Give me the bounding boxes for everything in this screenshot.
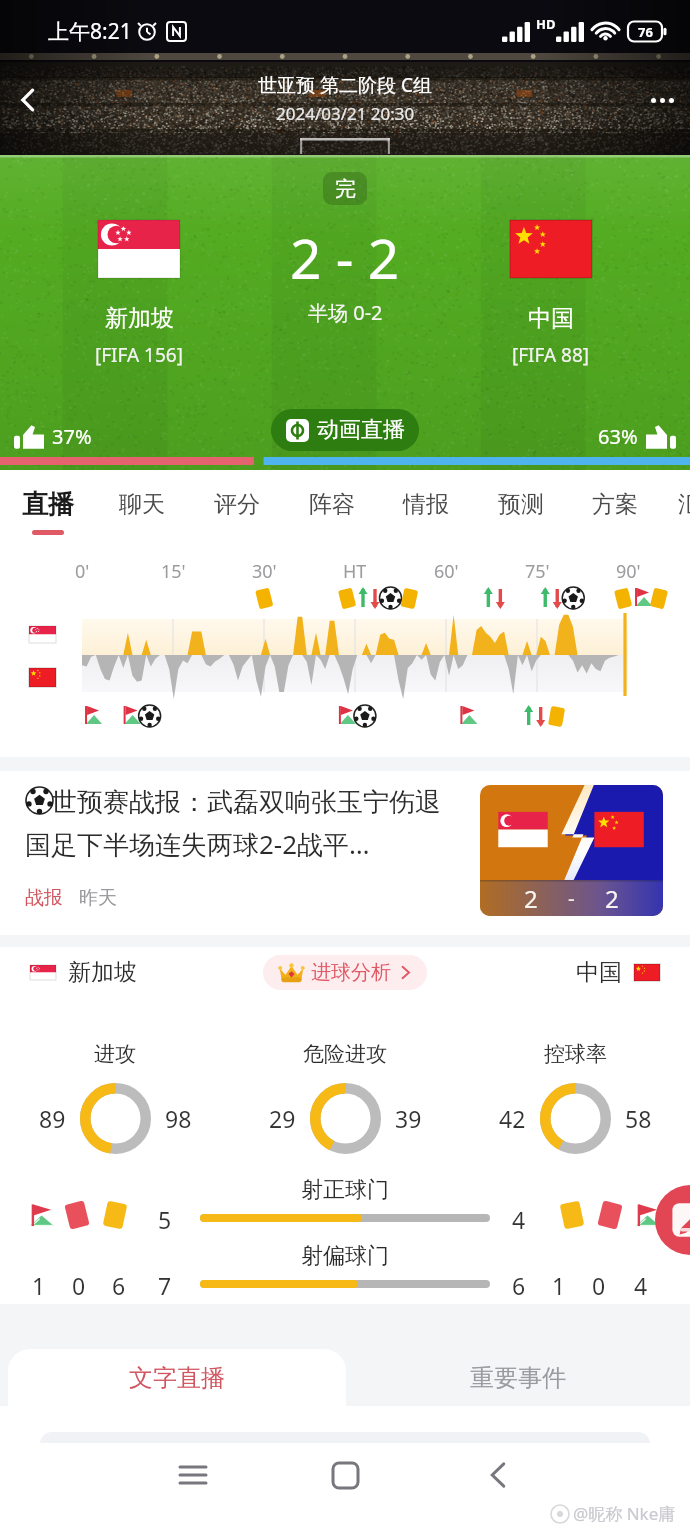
button[interactable]: 动画直播: [271, 409, 419, 451]
staticText: 4: [512, 1204, 526, 1235]
staticText: -: [568, 884, 575, 913]
staticText: 文字直播: [129, 1363, 225, 1393]
staticText: 评分: [214, 490, 260, 519]
button[interactable]: 方案: [583, 470, 647, 541]
staticText: HD: [536, 15, 556, 33]
button[interactable]: 聊天: [110, 470, 174, 541]
staticText: [FIFA 88]: [512, 342, 590, 368]
staticText: 进球分析: [311, 960, 391, 985]
button[interactable]: Back: [475, 1452, 521, 1498]
staticText: 阵容: [309, 490, 355, 519]
staticText: 汇率: [678, 490, 690, 519]
staticText: 战报: [25, 886, 63, 910]
staticText: 75': [525, 559, 550, 584]
button[interactable]: 评分: [205, 470, 269, 541]
staticText: 中国: [576, 958, 622, 987]
staticText: 昨天: [79, 886, 117, 910]
button[interactable]: 直播: [16, 470, 80, 541]
staticText: 7: [158, 1270, 172, 1301]
staticText: 危险进攻: [303, 1041, 387, 1067]
staticText: 重要事件: [470, 1363, 566, 1393]
staticText: [FIFA 156]: [95, 342, 183, 368]
staticText: 1: [552, 1270, 566, 1301]
staticText: 90': [616, 559, 641, 584]
button[interactable]: Recent apps: [170, 1452, 216, 1498]
staticText: 射偏球门: [301, 1242, 389, 1270]
staticText: @昵称 Nke庸: [573, 1502, 676, 1525]
button[interactable]: Home: [322, 1452, 368, 1498]
staticText: 情报: [403, 490, 449, 519]
staticText: 63%: [598, 423, 638, 450]
button[interactable]: 文字直播: [8, 1349, 346, 1406]
staticText: 1: [32, 1270, 46, 1301]
staticText: 方案: [592, 490, 638, 519]
staticText: 6: [512, 1270, 526, 1301]
staticText: 世亚预 第二阶段 C组: [258, 72, 432, 98]
staticText: 2: [524, 882, 538, 915]
staticText: 0': [75, 559, 90, 584]
staticText: 4: [634, 1270, 648, 1301]
staticText: 76: [638, 23, 653, 41]
staticText: 29: [269, 1103, 296, 1134]
staticText: 预测: [498, 490, 544, 519]
button[interactable]: 预测: [489, 470, 553, 541]
staticText: 完: [335, 176, 356, 202]
staticText: 98: [165, 1103, 192, 1134]
staticText: 聊天: [119, 490, 165, 519]
staticText: 动画直播: [317, 416, 405, 444]
button[interactable]: 汇率: [678, 470, 690, 541]
staticText: 上午8:21: [48, 17, 132, 46]
staticText: 60': [434, 559, 459, 584]
staticText: 58: [625, 1103, 652, 1134]
staticText: 2 - 2: [290, 220, 400, 295]
staticText: 89: [39, 1103, 66, 1134]
staticText: 39: [395, 1103, 422, 1134]
staticText: 2: [605, 882, 619, 915]
staticText: 30': [252, 559, 277, 584]
button[interactable]: Back: [0, 72, 56, 128]
button[interactable]: 情报: [394, 470, 458, 541]
button[interactable]: Compose post: [655, 1185, 690, 1255]
staticText: 0: [592, 1270, 606, 1301]
button[interactable]: 2: [0, 771, 690, 935]
staticText: 半场 0-2: [308, 299, 383, 326]
staticText: 射正球门: [301, 1176, 389, 1204]
staticText: 2024/03/21 20:30: [276, 102, 415, 125]
staticText: 世预赛战报：武磊双响张玉宁伤退 国足下半场连失两球2-2战平…: [25, 783, 453, 862]
button[interactable]: 阵容: [300, 470, 364, 541]
staticText: HT: [343, 559, 367, 584]
staticText: 5: [158, 1204, 172, 1235]
staticText: 直播: [22, 488, 74, 521]
staticText: 42: [499, 1103, 526, 1134]
staticText: 新加坡: [105, 304, 174, 333]
staticText: 新加坡: [68, 958, 137, 987]
staticText: 中国: [528, 304, 574, 333]
staticText: 6: [112, 1270, 126, 1301]
staticText: 0: [72, 1270, 86, 1301]
button[interactable]: 进球分析: [263, 955, 427, 990]
button[interactable]: More options: [634, 72, 690, 128]
button[interactable]: 重要事件: [346, 1349, 690, 1406]
staticText: 37%: [52, 423, 92, 450]
staticText: 控球率: [544, 1041, 607, 1067]
staticText: 进攻: [94, 1041, 136, 1067]
staticText: 15': [161, 559, 186, 584]
